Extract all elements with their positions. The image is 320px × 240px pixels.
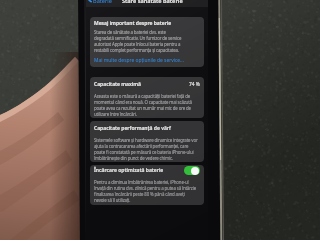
staticText: Pentru a diminua îmbătrânirea bateriei, … [94, 179, 197, 203]
staticText: Starea de sănătate a bateriei dvs. este … [94, 29, 182, 53]
button[interactable]: Mai multe despre opțiunile de service... [94, 57, 200, 64]
button[interactable]: Baterie [88, 0, 112, 4]
staticText: Mesaj important despre baterie [94, 20, 172, 27]
staticText: Sistemele software și hardware dinamice … [94, 137, 198, 161]
staticText: Baterie [93, 0, 112, 4]
staticText: Stare sănătate baterie [122, 0, 183, 4]
staticText: 74 % [189, 81, 200, 88]
staticText: Capacitate maximă [94, 81, 141, 88]
button[interactable]: Încărcare optimizată baterie [94, 166, 200, 175]
other: Încărcare optimizată baterie, activat [184, 166, 200, 175]
staticText: Capacitate performanță de vârf [94, 125, 171, 132]
staticText: Încărcare optimizată baterie [94, 167, 164, 174]
staticText: Aceasta este o măsură a capacității bate… [94, 93, 192, 117]
